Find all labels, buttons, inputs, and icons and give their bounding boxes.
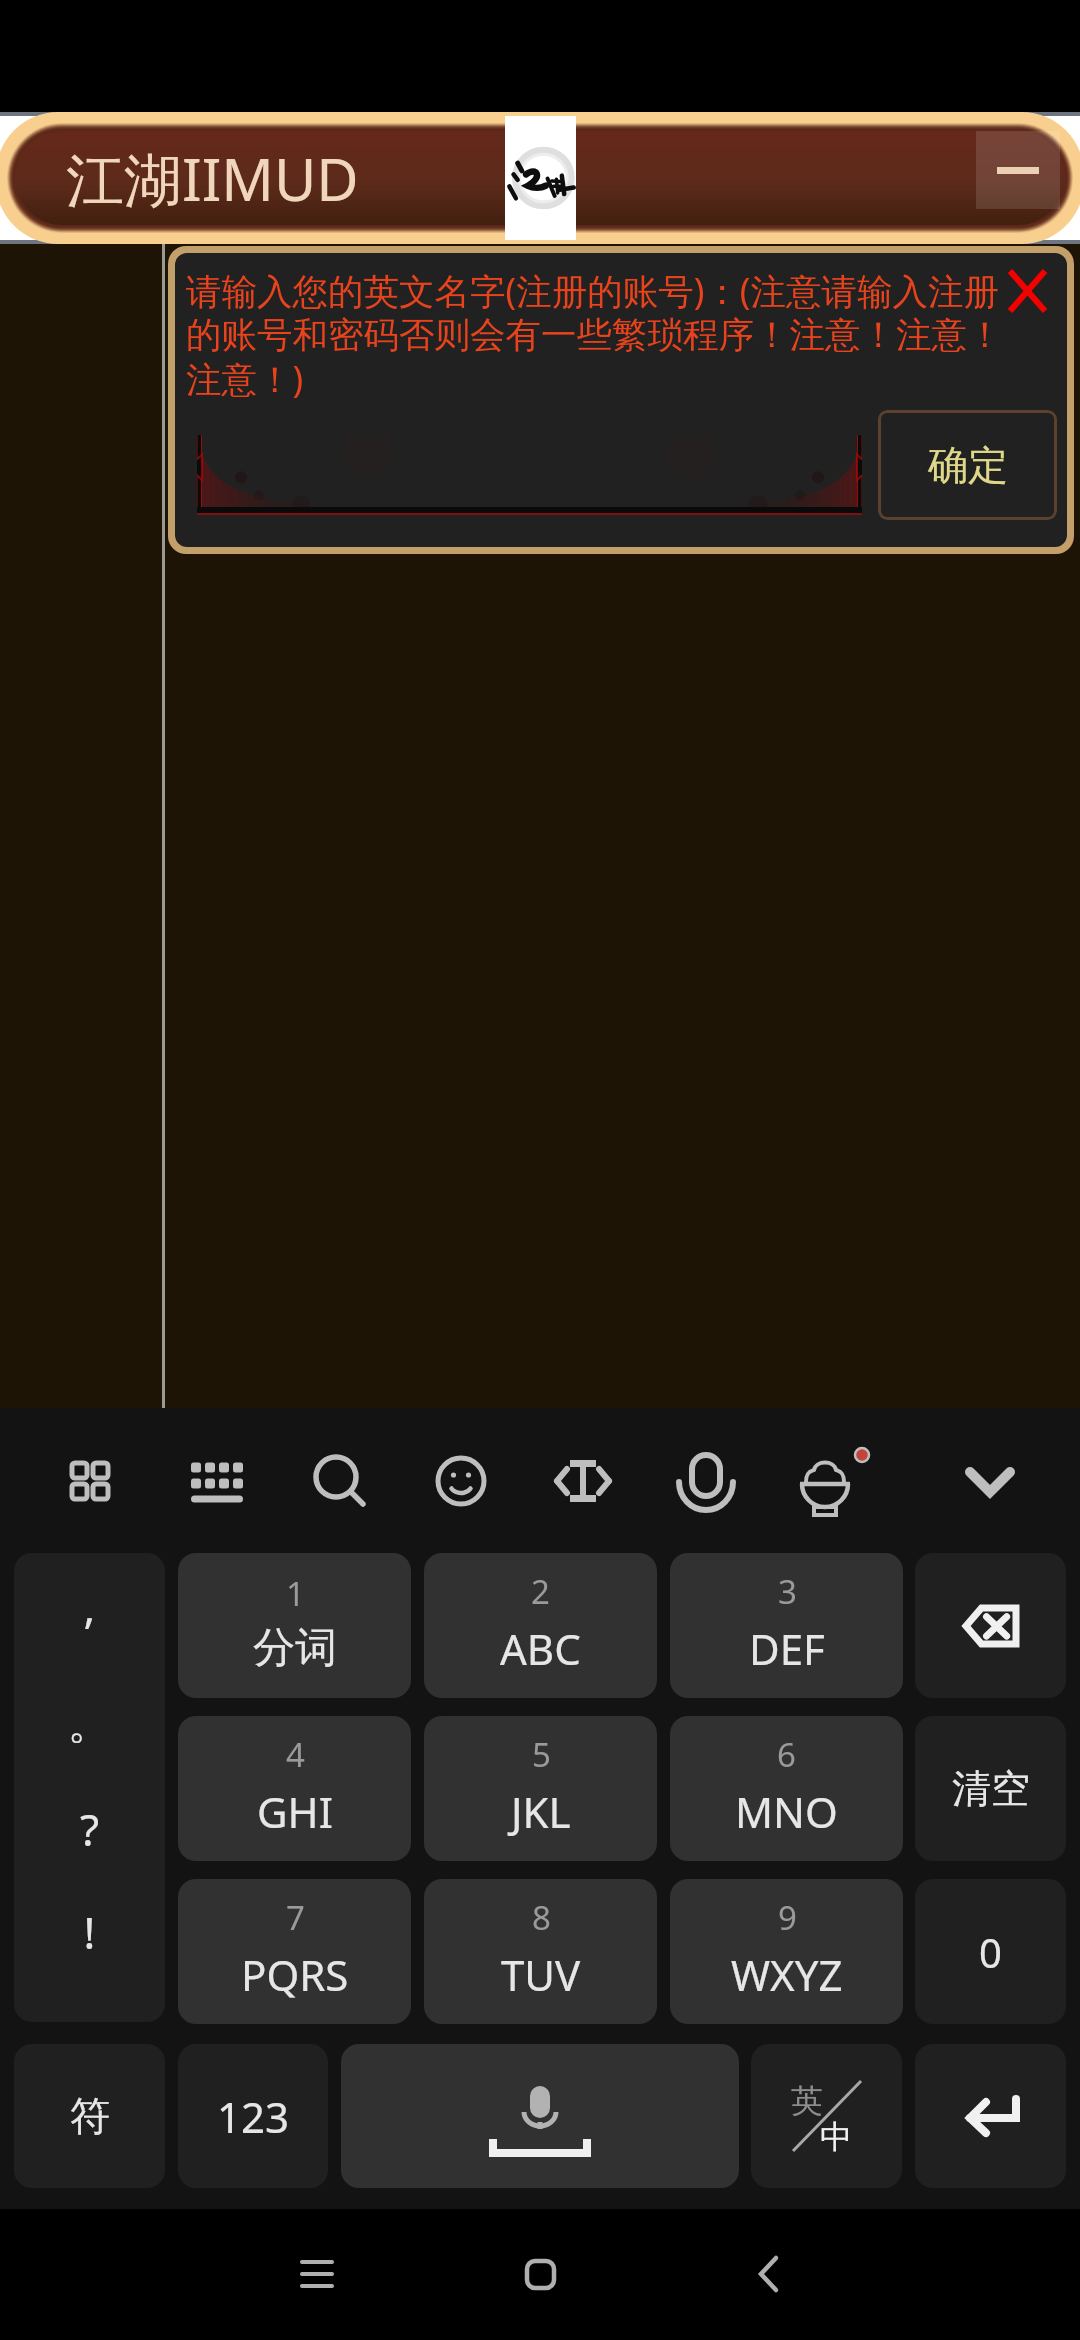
button[interactable]: 确定 [878, 410, 1057, 520]
staticText: 5 [532, 1732, 551, 1777]
staticText: 中 [820, 2117, 852, 2157]
button[interactable]: Enter [915, 2044, 1066, 2188]
button[interactable]: Apps [33, 1424, 147, 1538]
staticText: 123 [217, 2088, 290, 2145]
button[interactable]: Space [341, 2044, 739, 2188]
staticText: ? [14, 1799, 165, 1859]
staticText: 符 [70, 2091, 110, 2141]
button[interactable]: Keyboard [160, 1424, 274, 1538]
button[interactable]: Back [708, 2214, 828, 2334]
button[interactable]: Punctuation [14, 1553, 165, 2022]
staticText: MNO [735, 1783, 838, 1840]
staticText: 英 [791, 2081, 823, 2121]
button[interactable]: 2 [424, 1553, 657, 1698]
staticText: 。 [14, 1696, 165, 1751]
button[interactable]: 6 [670, 1716, 903, 1861]
button[interactable]: Backspace [915, 1553, 1066, 1698]
staticText: 1 [286, 1571, 305, 1616]
staticText: WXYZ [731, 1946, 843, 2003]
button[interactable]: Emoji [404, 1424, 518, 1538]
staticText: JKL [511, 1783, 571, 1840]
button[interactable]: Close [1001, 265, 1053, 317]
staticText: 清空 [952, 1764, 1030, 1813]
staticText: 0 [979, 1925, 1002, 1979]
staticText: TUV [501, 1946, 581, 2003]
staticText: , [14, 1576, 165, 1636]
staticText: 4 [286, 1732, 305, 1777]
button[interactable]: 8 [424, 1879, 657, 2024]
staticText: 9 [778, 1895, 797, 1940]
button[interactable]: 7 [178, 1879, 411, 2024]
button[interactable]: Home [480, 2214, 600, 2334]
staticText: 7 [286, 1895, 305, 1940]
staticText: 请输入您的英文名字(注册的账号)：(注意请输入注册的账号和密码否则会有一些繁琐程… [186, 266, 1014, 402]
button[interactable]: 清空 [915, 1716, 1066, 1861]
button[interactable]: 符 [14, 2044, 165, 2188]
staticText: 2 [531, 1569, 550, 1614]
button[interactable]: Search [283, 1424, 397, 1538]
button[interactable]: 123 [178, 2044, 328, 2188]
button[interactable]: 9 [670, 1879, 903, 2024]
button[interactable]: Voice [649, 1424, 763, 1538]
button[interactable]: Collapse [933, 1424, 1047, 1538]
staticText: 6 [777, 1732, 796, 1777]
staticText: PQRS [241, 1946, 349, 2003]
button[interactable]: Minimize [976, 131, 1060, 209]
button[interactable]: Text edit [526, 1424, 640, 1538]
staticText: 3 [778, 1569, 797, 1614]
staticText: GHI [257, 1783, 333, 1840]
button[interactable]: 4 [178, 1716, 411, 1861]
button[interactable]: 5 [424, 1716, 657, 1861]
button[interactable]: Recents [257, 2214, 377, 2334]
staticText: DEF [749, 1620, 825, 1677]
staticText: 8 [532, 1895, 551, 1940]
button[interactable]: 0 [915, 1879, 1066, 2024]
staticText: ! [14, 1902, 165, 1962]
staticText: 江湖IIMUD [66, 139, 359, 218]
button[interactable]: Theme [771, 1424, 885, 1538]
staticText: ABC [500, 1620, 581, 1677]
staticText: 确定 [928, 440, 1008, 490]
button[interactable]: 1 [178, 1553, 411, 1698]
button[interactable]: Switch language [751, 2044, 902, 2188]
staticText: 分词 [253, 1622, 337, 1675]
button[interactable]: 3 [670, 1553, 903, 1698]
